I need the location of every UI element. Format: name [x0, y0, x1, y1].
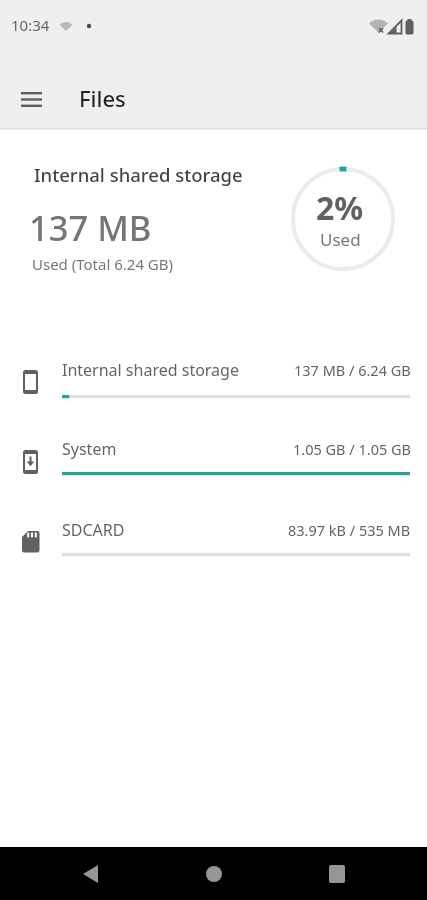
button[interactable] [0, 513, 427, 593]
staticText: 2% [316, 186, 364, 230]
button[interactable] [0, 432, 427, 512]
staticText: SDCARD [62, 519, 125, 541]
staticText: 83.97 kB / 535 MB [288, 520, 411, 540]
staticText: 137 MB / 6.24 GB [294, 360, 411, 380]
staticText: Internal shared storage [34, 162, 243, 187]
staticText: 137 MB [29, 204, 152, 251]
button[interactable] [164, 847, 264, 900]
staticText: System [62, 438, 117, 460]
staticText: 10:34 [11, 15, 50, 35]
staticText: 1.05 GB / 1.05 GB [293, 439, 411, 459]
staticText: Files [79, 83, 126, 113]
button[interactable] [11, 84, 51, 114]
button[interactable] [40, 847, 140, 900]
staticText: Used [320, 228, 361, 251]
button[interactable] [287, 847, 387, 900]
staticText: Used (Total 6.24 GB) [32, 254, 174, 274]
staticText: Internal shared storage [62, 359, 239, 381]
button[interactable] [0, 352, 427, 432]
